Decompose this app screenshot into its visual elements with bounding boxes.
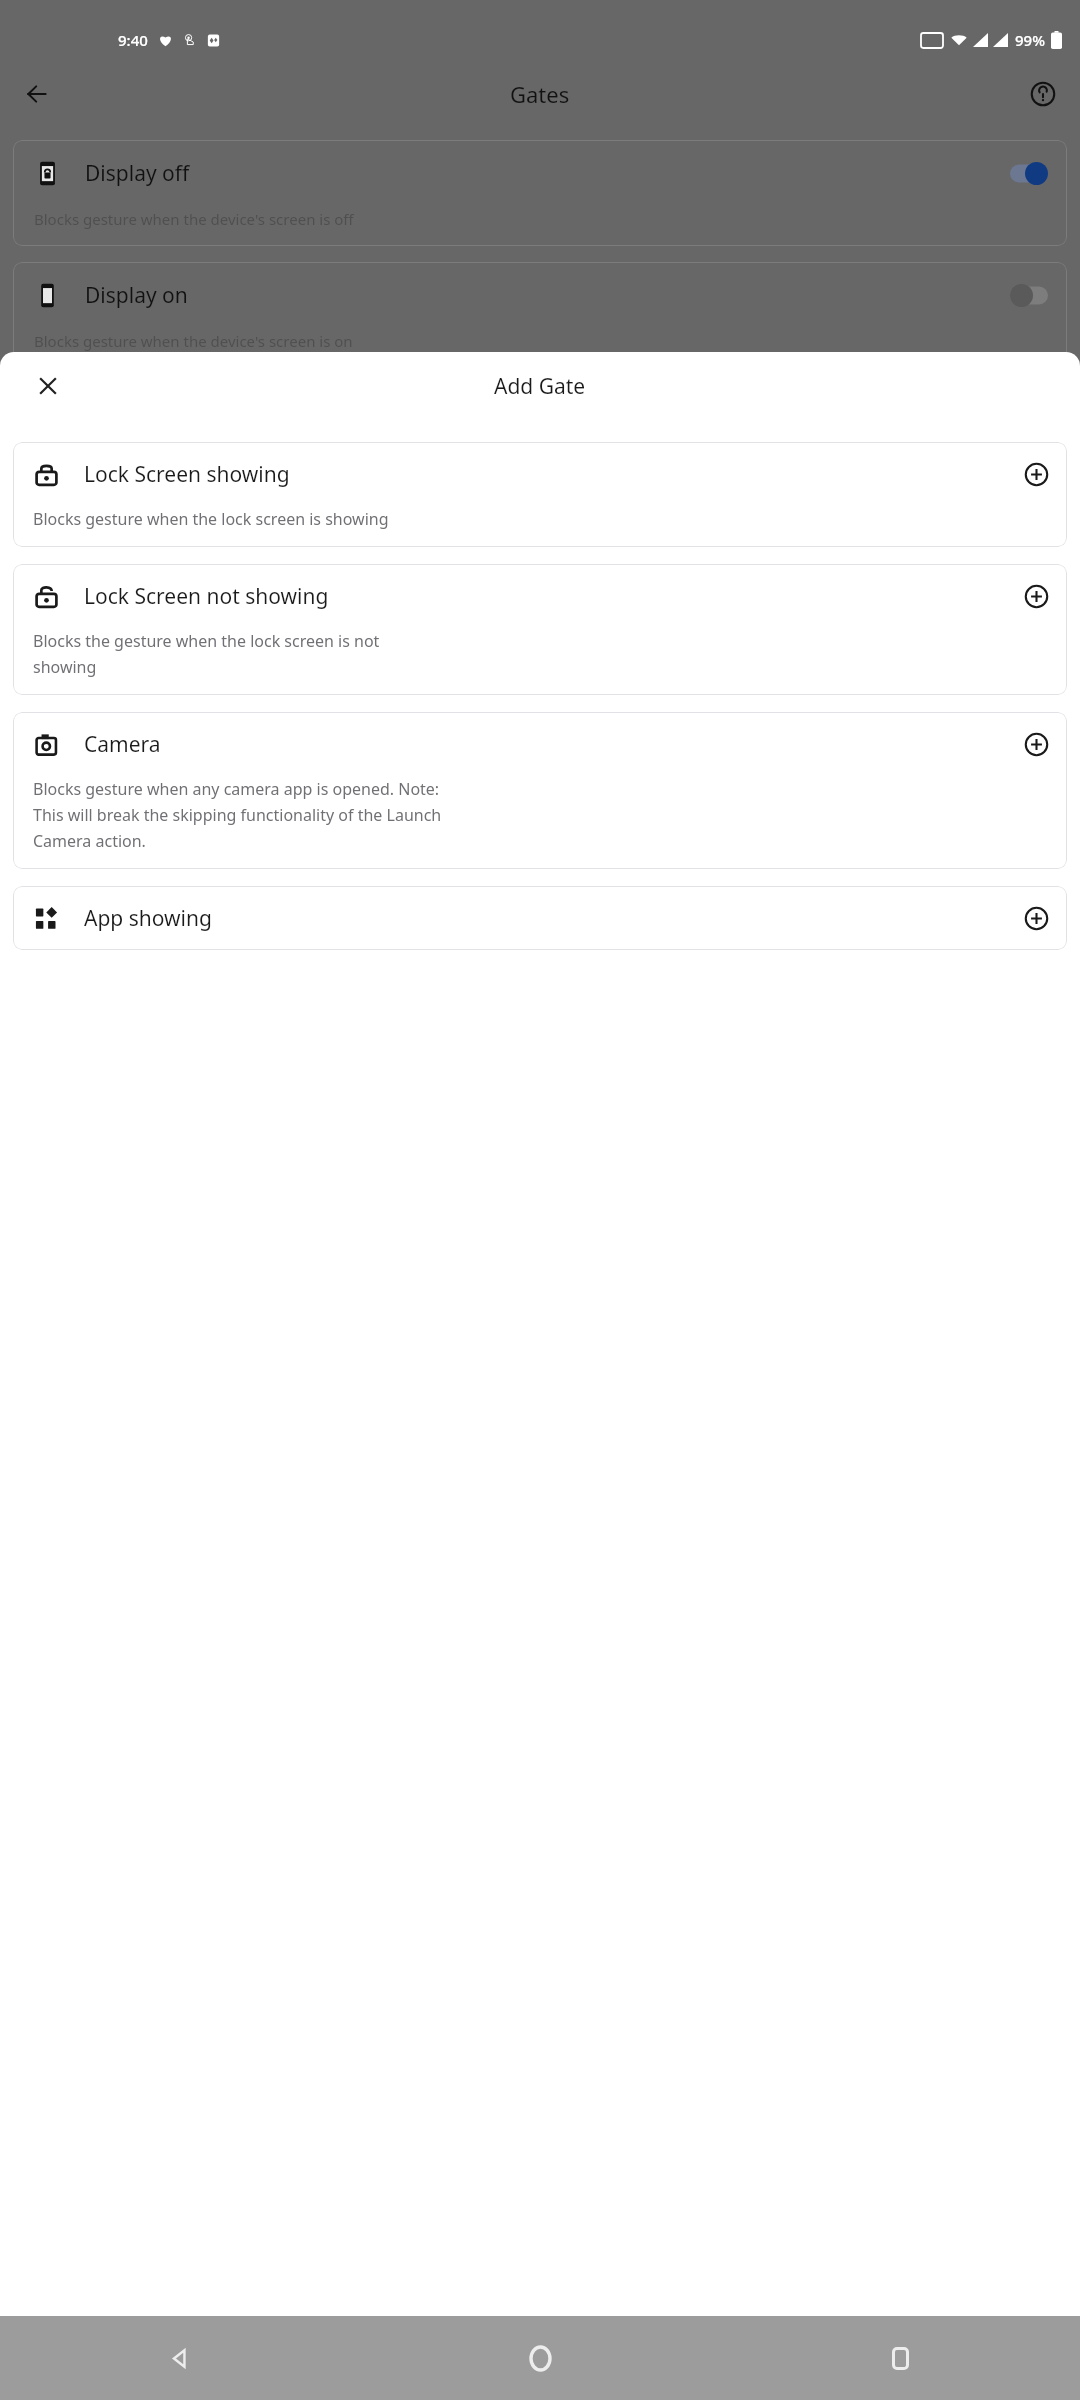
button[interactable]: Recents xyxy=(876,2334,924,2382)
staticText: Blocks gesture when the device's screen … xyxy=(34,331,353,351)
staticText: Blocks gesture when the device's screen … xyxy=(34,209,354,229)
button[interactable]: Display off xyxy=(13,140,1067,246)
button[interactable]: Display on xyxy=(13,262,1067,368)
button[interactable]: Close xyxy=(26,364,70,408)
staticText: 99% xyxy=(1015,30,1045,50)
staticText: Lock Screen not showing xyxy=(84,582,329,611)
staticText: Lock Screen showing xyxy=(84,460,290,489)
button[interactable]: Help xyxy=(1018,69,1068,119)
staticText: Camera xyxy=(84,730,161,759)
staticText: Display on xyxy=(85,281,188,310)
button[interactable]: Home xyxy=(516,2334,564,2382)
button[interactable]: Back xyxy=(156,2334,204,2382)
staticText: Add Gate xyxy=(494,372,586,401)
button[interactable]: Camera xyxy=(13,712,1067,869)
staticText: showing xyxy=(33,656,97,678)
staticText: Blocks gesture when a USB device is conn… xyxy=(34,453,366,473)
staticText: Blocks the gesture when the lock screen … xyxy=(33,630,380,652)
button[interactable]: App showing xyxy=(13,886,1067,950)
staticText: Blocks gesture when the lock screen is s… xyxy=(33,508,389,530)
button[interactable]: Lock Screen showing xyxy=(13,442,1067,547)
staticText: Gates xyxy=(510,79,570,109)
staticText: App showing xyxy=(84,904,212,933)
button[interactable]: Lock Screen not showing xyxy=(13,564,1067,695)
staticText: Blocks gesture when any camera app is op… xyxy=(33,778,440,800)
button[interactable]: USB device xyxy=(13,384,1067,490)
staticText: Camera action. xyxy=(33,830,146,852)
staticText: Display off xyxy=(85,159,190,188)
staticText: 9:40 xyxy=(118,30,148,50)
staticText: This will break the skipping functionali… xyxy=(33,804,442,826)
button[interactable]: Back xyxy=(12,69,62,119)
